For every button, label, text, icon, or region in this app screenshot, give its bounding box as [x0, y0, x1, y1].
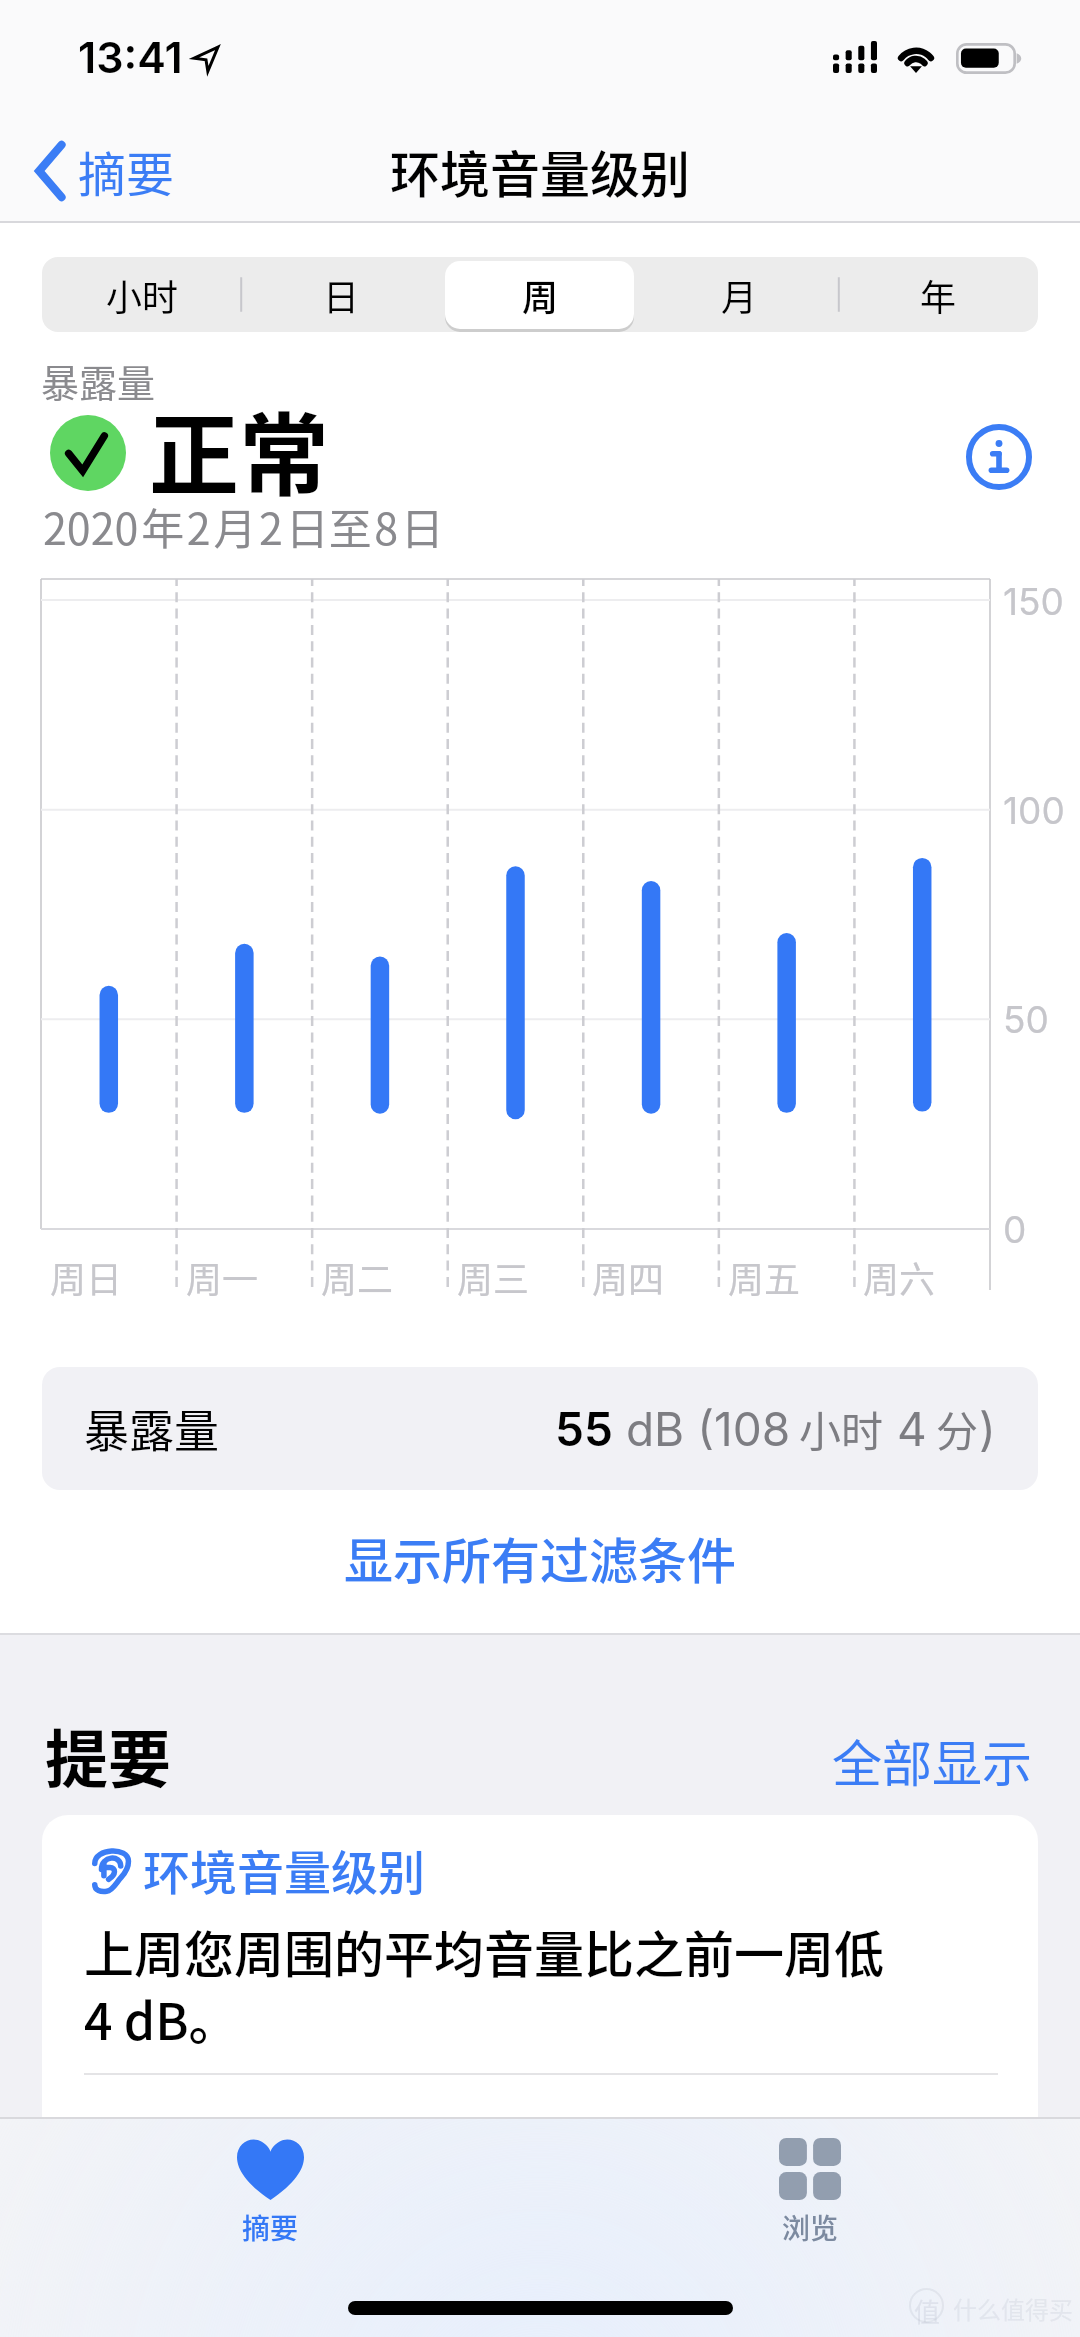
staticText: 提要 — [45, 1709, 171, 1800]
staticText: 浏览 — [782, 2207, 839, 2248]
staticText: 什么值得买 — [953, 2291, 1073, 2326]
staticText: 环境音量级别 — [390, 135, 690, 207]
staticText: 摘要 — [78, 136, 175, 206]
staticText: dB (108 — [613, 1401, 799, 1457]
staticText: 150 — [1003, 579, 1064, 624]
staticText: 2020 年 2 月 2 日至 8 日 — [43, 495, 444, 557]
staticText: 周三 — [457, 1251, 530, 1303]
staticText: 周 — [522, 269, 559, 321]
staticText: 小时 — [799, 1398, 884, 1459]
staticText: 周一 — [186, 1251, 259, 1303]
staticText: 100 — [1003, 788, 1065, 833]
staticText: 4 — [884, 1401, 936, 1457]
button[interactable]: 全部显示 — [832, 1724, 1032, 1796]
button[interactable]: 年 — [839, 257, 1038, 332]
staticText: 环境音量级别 — [143, 1835, 425, 1903]
staticText: 周五 — [728, 1251, 801, 1303]
staticText: 55 — [555, 1401, 613, 1457]
button[interactable]: 日 — [242, 257, 441, 332]
button[interactable]: Info — [955, 413, 1043, 501]
staticText: 全部显示 — [832, 1724, 1032, 1796]
staticText: ) — [979, 1401, 996, 1457]
button[interactable]: 摘要 — [34, 128, 175, 214]
staticText: 分 — [936, 1398, 979, 1459]
staticText: 显示所有过滤条件 — [344, 1522, 737, 1593]
staticText: 周日 — [50, 1251, 123, 1303]
staticText: 年 — [920, 269, 957, 321]
staticText: 暴露量 — [84, 1396, 220, 1461]
staticText: 13:41 — [78, 31, 183, 83]
button[interactable]: 小时 — [42, 257, 242, 332]
button[interactable]: 显示所有过滤条件 — [0, 1512, 1080, 1602]
staticText: 0 — [1003, 1207, 1027, 1252]
button[interactable]: 月 — [640, 257, 839, 332]
button[interactable]: 浏览 — [680, 2125, 940, 2275]
staticText: 周四 — [592, 1251, 665, 1303]
staticText: 正常 — [149, 384, 329, 514]
staticText: 小时 — [106, 269, 179, 321]
staticText: 月 — [721, 269, 758, 321]
button[interactable]: 摘要 — [140, 2125, 400, 2275]
staticText: 日 — [323, 269, 360, 321]
button[interactable]: 环境音量级别 — [42, 1815, 1038, 2118]
staticText: 50 — [1003, 997, 1049, 1042]
staticText: 值 — [914, 2292, 941, 2330]
staticText: 上周您周围的平均音量比之前一周低 4 dB。 — [84, 1915, 1004, 2054]
staticText: 周六 — [863, 1251, 936, 1303]
staticText: 摘要 — [242, 2207, 299, 2248]
staticText: 周二 — [321, 1251, 394, 1303]
staticText: 暴露量 — [41, 353, 156, 408]
button[interactable]: 暴露量 — [42, 1367, 1038, 1490]
button[interactable]: 周 — [441, 257, 640, 332]
